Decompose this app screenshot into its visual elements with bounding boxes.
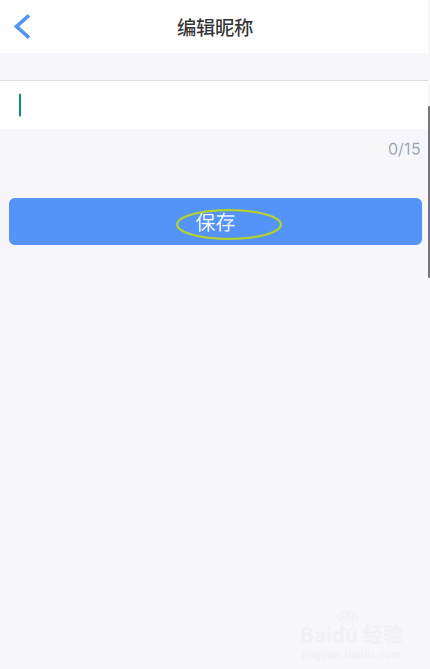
button[interactable]: 保存	[9, 198, 422, 245]
staticText: 0/15	[388, 139, 421, 159]
staticText: 编辑昵称	[177, 12, 253, 40]
staticText: 保存	[195, 207, 235, 236]
button[interactable]: Back	[0, 0, 46, 53]
